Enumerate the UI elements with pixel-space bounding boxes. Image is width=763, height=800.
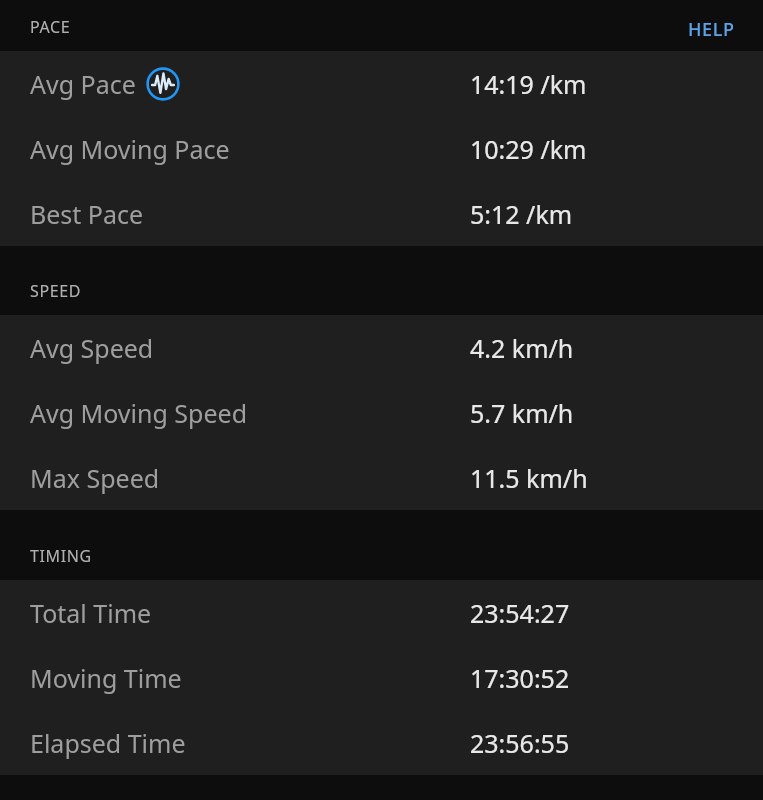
staticText: Best Pace [30,197,144,231]
staticText: Max Speed [30,461,160,495]
button[interactable]: Avg Moving Speed [0,380,763,445]
other: Pace detail [146,67,180,101]
staticText: 5.7 km/h [470,396,574,430]
staticText: 17:30:52 [470,661,570,695]
button[interactable]: Moving Time [0,645,763,710]
staticText: 23:56:55 [470,726,570,760]
staticText: HELP [688,17,735,42]
staticText: Avg Pace [30,67,136,101]
staticText: 10:29 /km [470,132,587,166]
staticText: 4.2 km/h [470,331,574,365]
button[interactable]: Avg Speed [0,315,763,380]
staticText: 14:19 /km [470,67,587,101]
staticText: PACE [30,16,71,38]
staticText: SPEED [30,280,81,302]
button[interactable]: Elapsed Time [0,710,763,775]
button[interactable]: Avg Moving Pace [0,116,763,181]
staticText: 11.5 km/h [470,461,588,495]
staticText: Total Time [30,596,152,630]
staticText: Avg Moving Pace [30,132,230,166]
staticText: 23:54:27 [470,596,570,630]
staticText: Avg Speed [30,331,154,365]
button[interactable]: Avg Pace [0,51,763,116]
button[interactable]: HELP [670,9,763,51]
button[interactable]: Max Speed [0,445,763,510]
staticText: Moving Time [30,661,182,695]
staticText: 5:12 /km [470,197,573,231]
button[interactable]: Best Pace [0,181,763,246]
staticText: Elapsed Time [30,726,186,760]
staticText: TIMING [30,545,92,567]
button[interactable]: Total Time [0,580,763,645]
staticText: Avg Moving Speed [30,396,248,430]
